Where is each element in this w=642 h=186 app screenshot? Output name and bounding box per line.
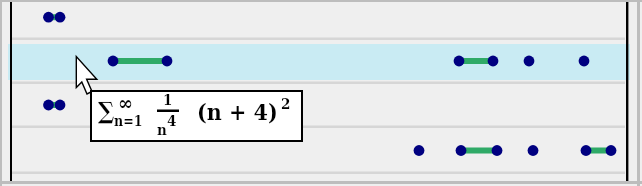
staticText: 2 bbox=[281, 95, 291, 113]
staticText: 4 bbox=[167, 112, 177, 130]
staticText: n bbox=[157, 121, 167, 139]
staticText: ∑ bbox=[98, 96, 115, 124]
staticText: (n + 4) bbox=[197, 98, 278, 125]
button[interactable]: Score editor bbox=[0, 0, 642, 186]
staticText: n=1 bbox=[114, 113, 143, 129]
staticText: 1 bbox=[163, 91, 173, 109]
staticText: ∞ bbox=[118, 91, 133, 114]
